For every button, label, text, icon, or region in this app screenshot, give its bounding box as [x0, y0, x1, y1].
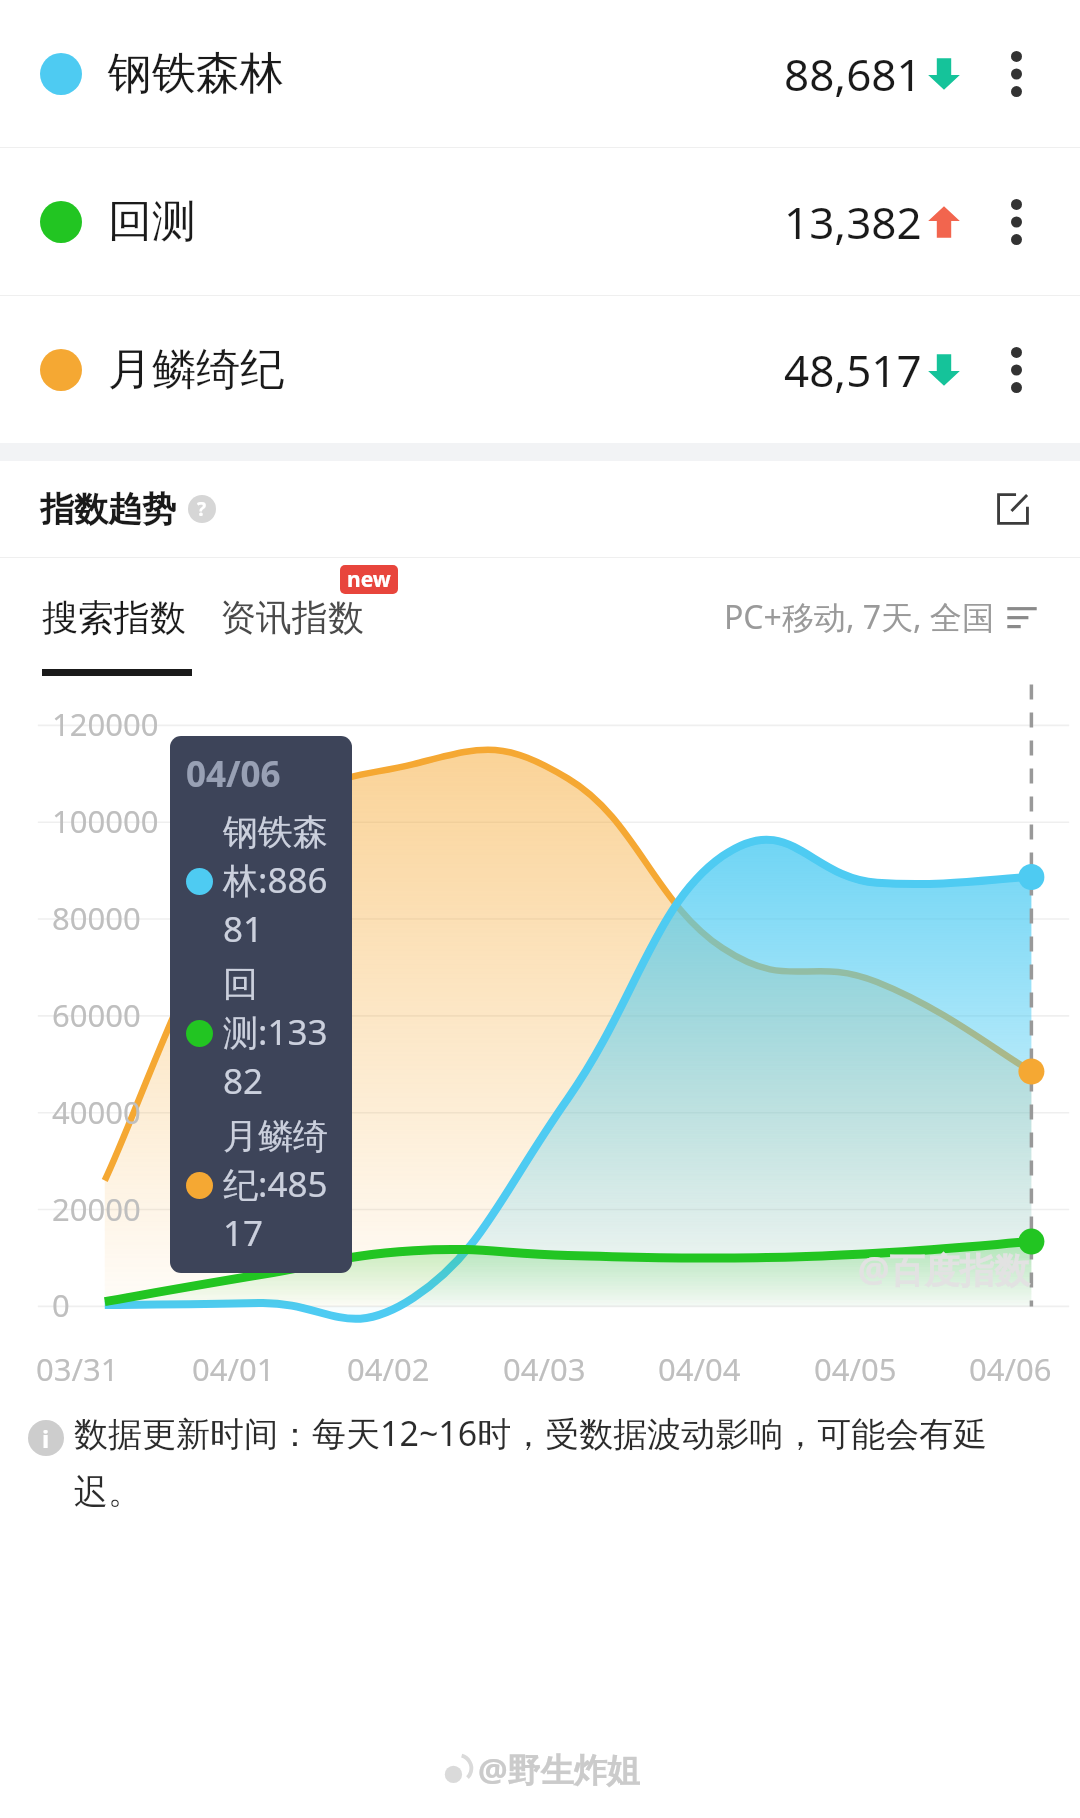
staticText: 04/02	[347, 1348, 430, 1390]
button[interactable]: 搜索指数	[42, 595, 186, 640]
button[interactable]: 月鳞绮纪	[0, 296, 1080, 443]
staticText: @百度指数	[858, 1246, 1030, 1294]
staticText: 钢铁森林	[108, 46, 284, 101]
staticText: 80000	[52, 897, 141, 939]
staticText: i	[42, 1422, 50, 1455]
button[interactable]: 回测	[0, 148, 1080, 295]
staticText: 搜索指数	[42, 595, 186, 640]
button[interactable]: 更多	[992, 198, 1040, 246]
staticText: 回测	[108, 194, 196, 249]
staticText: ?	[197, 496, 207, 522]
staticText: 资讯指数	[220, 595, 364, 640]
staticText: 60000	[52, 994, 141, 1036]
staticText: 100000	[52, 800, 159, 842]
staticText: PC+移动, 7天, 全国	[724, 595, 994, 639]
staticText: 0	[52, 1284, 70, 1326]
staticText: new	[347, 565, 391, 594]
staticText: 回测:13382	[223, 962, 340, 1105]
button[interactable]: 帮助	[188, 495, 216, 523]
staticText: 13,382	[784, 192, 922, 252]
staticText: 04/03	[503, 1348, 586, 1390]
staticText: 04/06	[186, 750, 281, 798]
staticText: 48,517	[784, 340, 922, 400]
button[interactable]: 资讯指数	[220, 595, 364, 640]
staticText: 120000	[52, 703, 159, 745]
staticText: 04/06	[969, 1348, 1052, 1390]
staticText: 04/04	[658, 1348, 741, 1390]
staticText: 40000	[52, 1091, 141, 1133]
staticText: 04/05	[814, 1348, 897, 1390]
button[interactable]: 在新页面打开	[986, 482, 1040, 536]
staticText: 数据更新时间：每天12~16时，受数据波动影响，可能会有延迟。	[74, 1410, 1052, 1513]
staticText: 钢铁森林:88681	[223, 810, 340, 953]
staticText: 月鳞绮纪	[108, 342, 284, 397]
staticText: 03/31	[36, 1348, 119, 1390]
staticText: @野生炸姐	[478, 1747, 640, 1792]
staticText: 20000	[52, 1188, 141, 1230]
staticText: 04/01	[192, 1348, 275, 1390]
staticText: 月鳞绮纪:48517	[223, 1114, 340, 1257]
button[interactable]: 钢铁森林	[0, 0, 1080, 147]
staticText: 88,681	[784, 44, 922, 104]
button[interactable]: PC+移动, 7天, 全国	[724, 595, 1038, 639]
staticText: 指数趋势	[40, 488, 176, 531]
button[interactable]: 更多	[992, 346, 1040, 394]
button[interactable]: 更多	[992, 50, 1040, 98]
